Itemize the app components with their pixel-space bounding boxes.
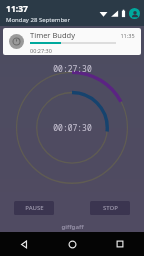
staticText: 11:35 bbox=[120, 32, 135, 39]
staticText: 00:27:30 bbox=[53, 63, 92, 74]
staticText: giffgaff bbox=[61, 223, 84, 231]
staticText: 00:07:30 bbox=[53, 122, 92, 133]
button[interactable]: Back bbox=[0, 232, 48, 256]
staticText: STOP bbox=[103, 204, 118, 212]
button[interactable]: Home bbox=[48, 232, 96, 256]
staticText: Timer Buddy bbox=[30, 30, 75, 40]
staticText: 00:27:30 bbox=[30, 47, 52, 54]
button[interactable]: Recents bbox=[96, 232, 144, 256]
button[interactable]: STOP bbox=[90, 201, 130, 215]
staticText: 11:37 bbox=[6, 3, 28, 15]
staticText: Monday 28 September bbox=[6, 16, 70, 24]
button[interactable]: Timer Buddy bbox=[3, 28, 141, 55]
other: Account bbox=[129, 8, 140, 19]
button[interactable]: PAUSE bbox=[14, 201, 54, 215]
staticText: PAUSE bbox=[25, 204, 44, 212]
